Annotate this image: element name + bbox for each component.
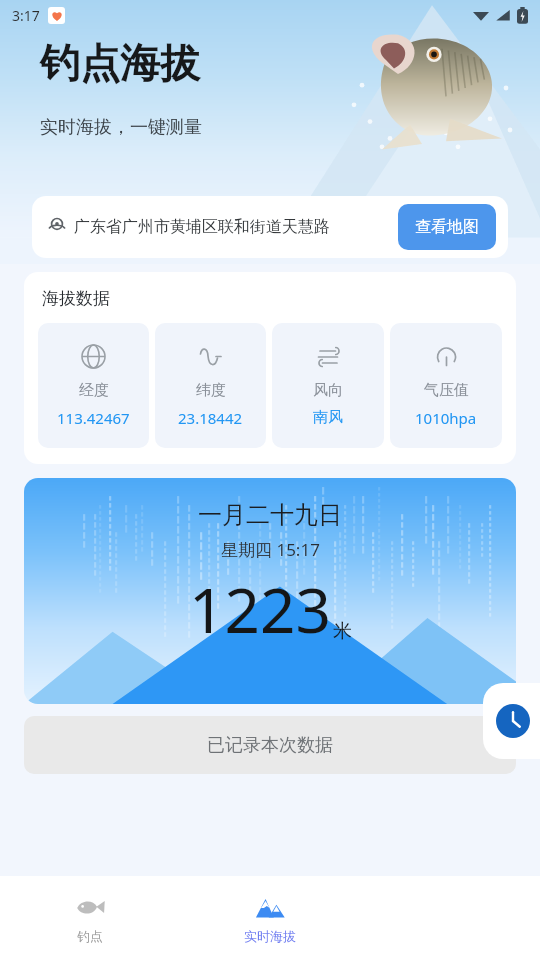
- staticText: 实时海拔，一键测量: [40, 116, 202, 139]
- staticText: 113.42467: [57, 408, 130, 428]
- staticText: 实时海拔: [244, 928, 296, 944]
- staticText: 海拔数据: [42, 288, 110, 309]
- staticText: 南风: [313, 408, 343, 427]
- staticText: 经度: [79, 381, 109, 400]
- staticText: 1010hpa: [415, 408, 477, 428]
- staticText: 广东省广州市黄埔区联和街道天慧路: [74, 217, 330, 237]
- staticText: 1223: [189, 567, 331, 651]
- button[interactable]: 钓点: [0, 892, 180, 944]
- button[interactable]: 一月二十九日: [24, 478, 516, 704]
- staticText: 一月二十九日: [198, 500, 342, 530]
- staticText: 星期四 15:17: [221, 538, 320, 561]
- staticText: 钓点海拔: [40, 38, 200, 88]
- button[interactable]: 已记录本次数据: [24, 716, 516, 774]
- button[interactable]: 纬度: [155, 323, 266, 448]
- staticText: 已记录本次数据: [207, 734, 333, 757]
- staticText: 气压值: [424, 381, 469, 400]
- staticText: 米: [333, 619, 352, 643]
- staticText: 纬度: [196, 381, 226, 400]
- staticText: 查看地图: [415, 217, 479, 237]
- button[interactable]: 广东省广州市黄埔区联和街道天慧路: [32, 196, 508, 258]
- button[interactable]: 经度: [38, 323, 149, 448]
- staticText: 23.18442: [178, 408, 243, 428]
- staticText: 风向: [313, 381, 343, 400]
- staticText: 钓点: [77, 928, 103, 944]
- button[interactable]: 气压值: [390, 323, 502, 448]
- button[interactable]: History: [483, 683, 540, 759]
- staticText: 3:17: [12, 6, 40, 25]
- button[interactable]: 实时海拔: [180, 892, 360, 944]
- button[interactable]: 风向: [272, 323, 384, 448]
- button[interactable]: 查看地图: [398, 204, 496, 250]
